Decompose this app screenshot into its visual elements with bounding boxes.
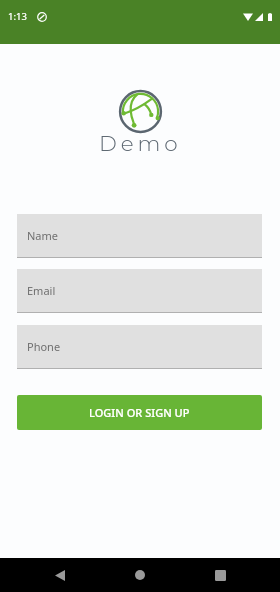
button[interactable]: Back — [40, 558, 80, 592]
button[interactable]: Home — [120, 558, 160, 592]
staticText: Phone — [27, 339, 61, 354]
button[interactable]: Name — [17, 214, 262, 257]
staticText: LOGIN OR SIGN UP — [89, 405, 190, 420]
staticText: Name — [27, 228, 59, 243]
button[interactable]: Recent apps — [200, 558, 240, 592]
button[interactable]: Phone — [17, 325, 262, 368]
staticText: Email — [27, 283, 56, 298]
button[interactable]: LOGIN OR SIGN UP — [17, 395, 262, 430]
staticText: 1:13 — [8, 10, 27, 23]
staticText: Demo — [99, 130, 182, 156]
button[interactable]: Email — [17, 269, 262, 312]
